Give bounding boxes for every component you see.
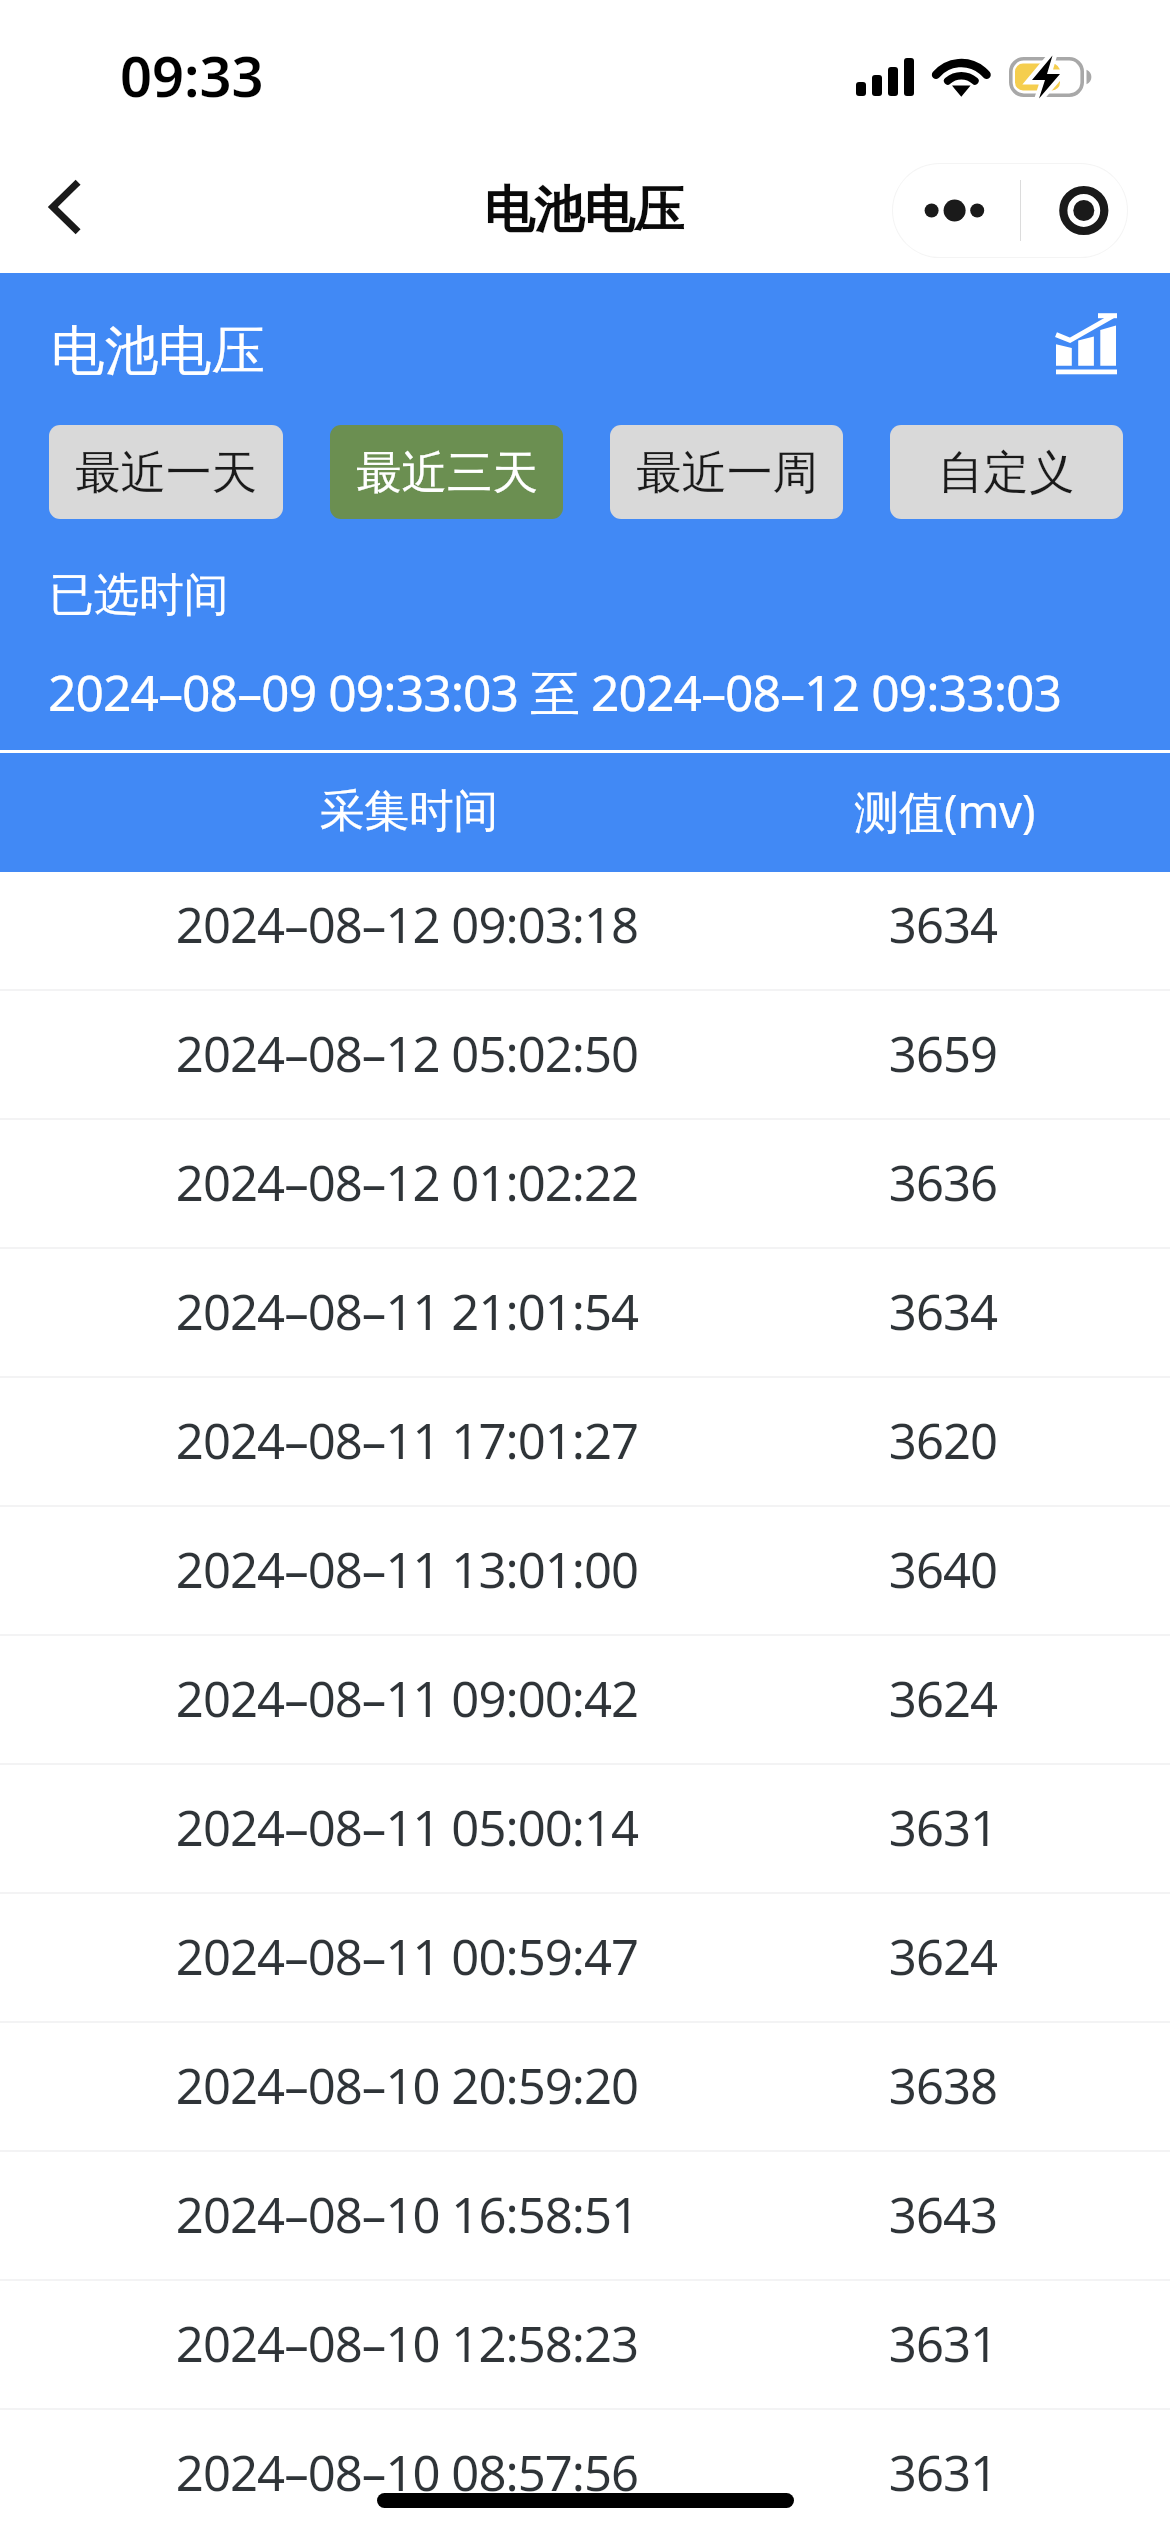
- staticText: 3659: [811, 1020, 1075, 1087]
- staticText: 2024–08–10 16:58:51: [2, 2181, 812, 2248]
- button[interactable]: 2024–08–11 17:01:27: [0, 1378, 1170, 1507]
- staticText: 已选时间: [49, 567, 229, 624]
- button[interactable]: 2024–08–10 08:57:56: [0, 2410, 1170, 2532]
- button[interactable]: 2024–08–12 09:03:18: [0, 862, 1170, 991]
- button[interactable]: 2024–08–10 16:58:51: [0, 2152, 1170, 2281]
- button[interactable]: 2024–08–12 01:02:22: [0, 1120, 1170, 1249]
- staticText: 最近一天: [75, 444, 257, 501]
- button[interactable]: 自定义: [890, 425, 1123, 519]
- staticText: 自定义: [938, 444, 1075, 501]
- button[interactable]: 最近三天: [330, 425, 563, 519]
- staticText: 3624: [811, 1923, 1075, 1990]
- staticText: 最近一周: [636, 444, 818, 501]
- staticText: 电池电压: [51, 317, 265, 384]
- button[interactable]: 2024–08–11 21:01:54: [0, 1249, 1170, 1378]
- staticText: 2024–08–11 09:00:42: [2, 1665, 812, 1732]
- button[interactable]: 2024–08–11 00:59:47: [0, 1894, 1170, 2023]
- staticText: 测值(mv): [813, 780, 1077, 841]
- button[interactable]: 2024–08–11 05:00:14: [0, 1765, 1170, 1894]
- staticText: 3636: [811, 1149, 1075, 1216]
- button[interactable]: Close: [1021, 164, 1127, 257]
- staticText: 2024–08–11 17:01:27: [2, 1407, 812, 1474]
- staticText: 3624: [811, 1665, 1075, 1732]
- staticText: 2024–08–12 01:02:22: [2, 1149, 812, 1216]
- staticText: 3638: [811, 2052, 1075, 2119]
- staticText: 3643: [811, 2181, 1075, 2248]
- staticText: 09:33: [120, 37, 264, 113]
- button[interactable]: Back: [14, 167, 94, 247]
- button[interactable]: Chart: [1041, 308, 1131, 380]
- staticText: 2024–08–11 13:01:00: [2, 1536, 812, 1603]
- button[interactable]: 最近一周: [610, 425, 843, 519]
- button[interactable]: 2024–08–10 20:59:20: [0, 2023, 1170, 2152]
- button[interactable]: 2024–08–11 13:01:00: [0, 1507, 1170, 1636]
- button[interactable]: 2024–08–11 09:00:42: [0, 1636, 1170, 1765]
- staticText: 3631: [811, 2439, 1075, 2506]
- button[interactable]: More options: [893, 164, 1020, 257]
- staticText: 2024–08–09 09:33:03 至 2024–08–12 09:33:0…: [48, 658, 1062, 726]
- staticText: 2024–08–11 05:00:14: [2, 1794, 812, 1861]
- button[interactable]: 2024–08–12 05:02:50: [0, 991, 1170, 1120]
- staticText: 2024–08–10 08:57:56: [2, 2439, 812, 2506]
- staticText: 采集时间: [4, 783, 814, 839]
- staticText: 3631: [811, 1794, 1075, 1861]
- staticText: 2024–08–12 09:03:18: [2, 891, 812, 958]
- button[interactable]: 最近一天: [49, 425, 283, 519]
- staticText: 最近三天: [356, 444, 538, 501]
- staticText: 3640: [811, 1536, 1075, 1603]
- staticText: 2024–08–10 12:58:23: [2, 2310, 812, 2377]
- staticText: 2024–08–12 05:02:50: [2, 1020, 812, 1087]
- staticText: 2024–08–11 21:01:54: [2, 1278, 812, 1345]
- staticText: 3631: [811, 2310, 1075, 2377]
- staticText: 电池电压: [484, 179, 684, 242]
- staticText: 3620: [811, 1407, 1075, 1474]
- staticText: 3634: [811, 891, 1075, 958]
- staticText: 2024–08–11 00:59:47: [2, 1923, 812, 1990]
- button[interactable]: 2024–08–10 12:58:23: [0, 2281, 1170, 2410]
- staticText: 2024–08–10 20:59:20: [2, 2052, 812, 2119]
- staticText: 3634: [811, 1278, 1075, 1345]
